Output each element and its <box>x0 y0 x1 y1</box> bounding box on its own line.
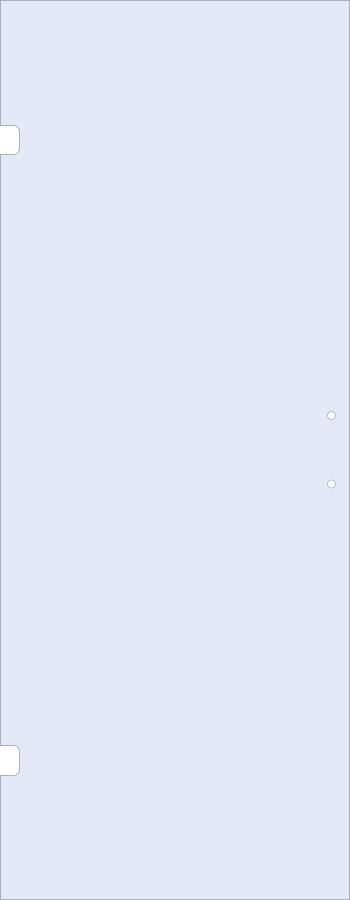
button[interactable]: Option one <box>327 411 336 420</box>
button[interactable]: Card <box>0 745 20 776</box>
button[interactable]: Option two <box>327 479 336 488</box>
button[interactable]: Card <box>0 125 20 155</box>
